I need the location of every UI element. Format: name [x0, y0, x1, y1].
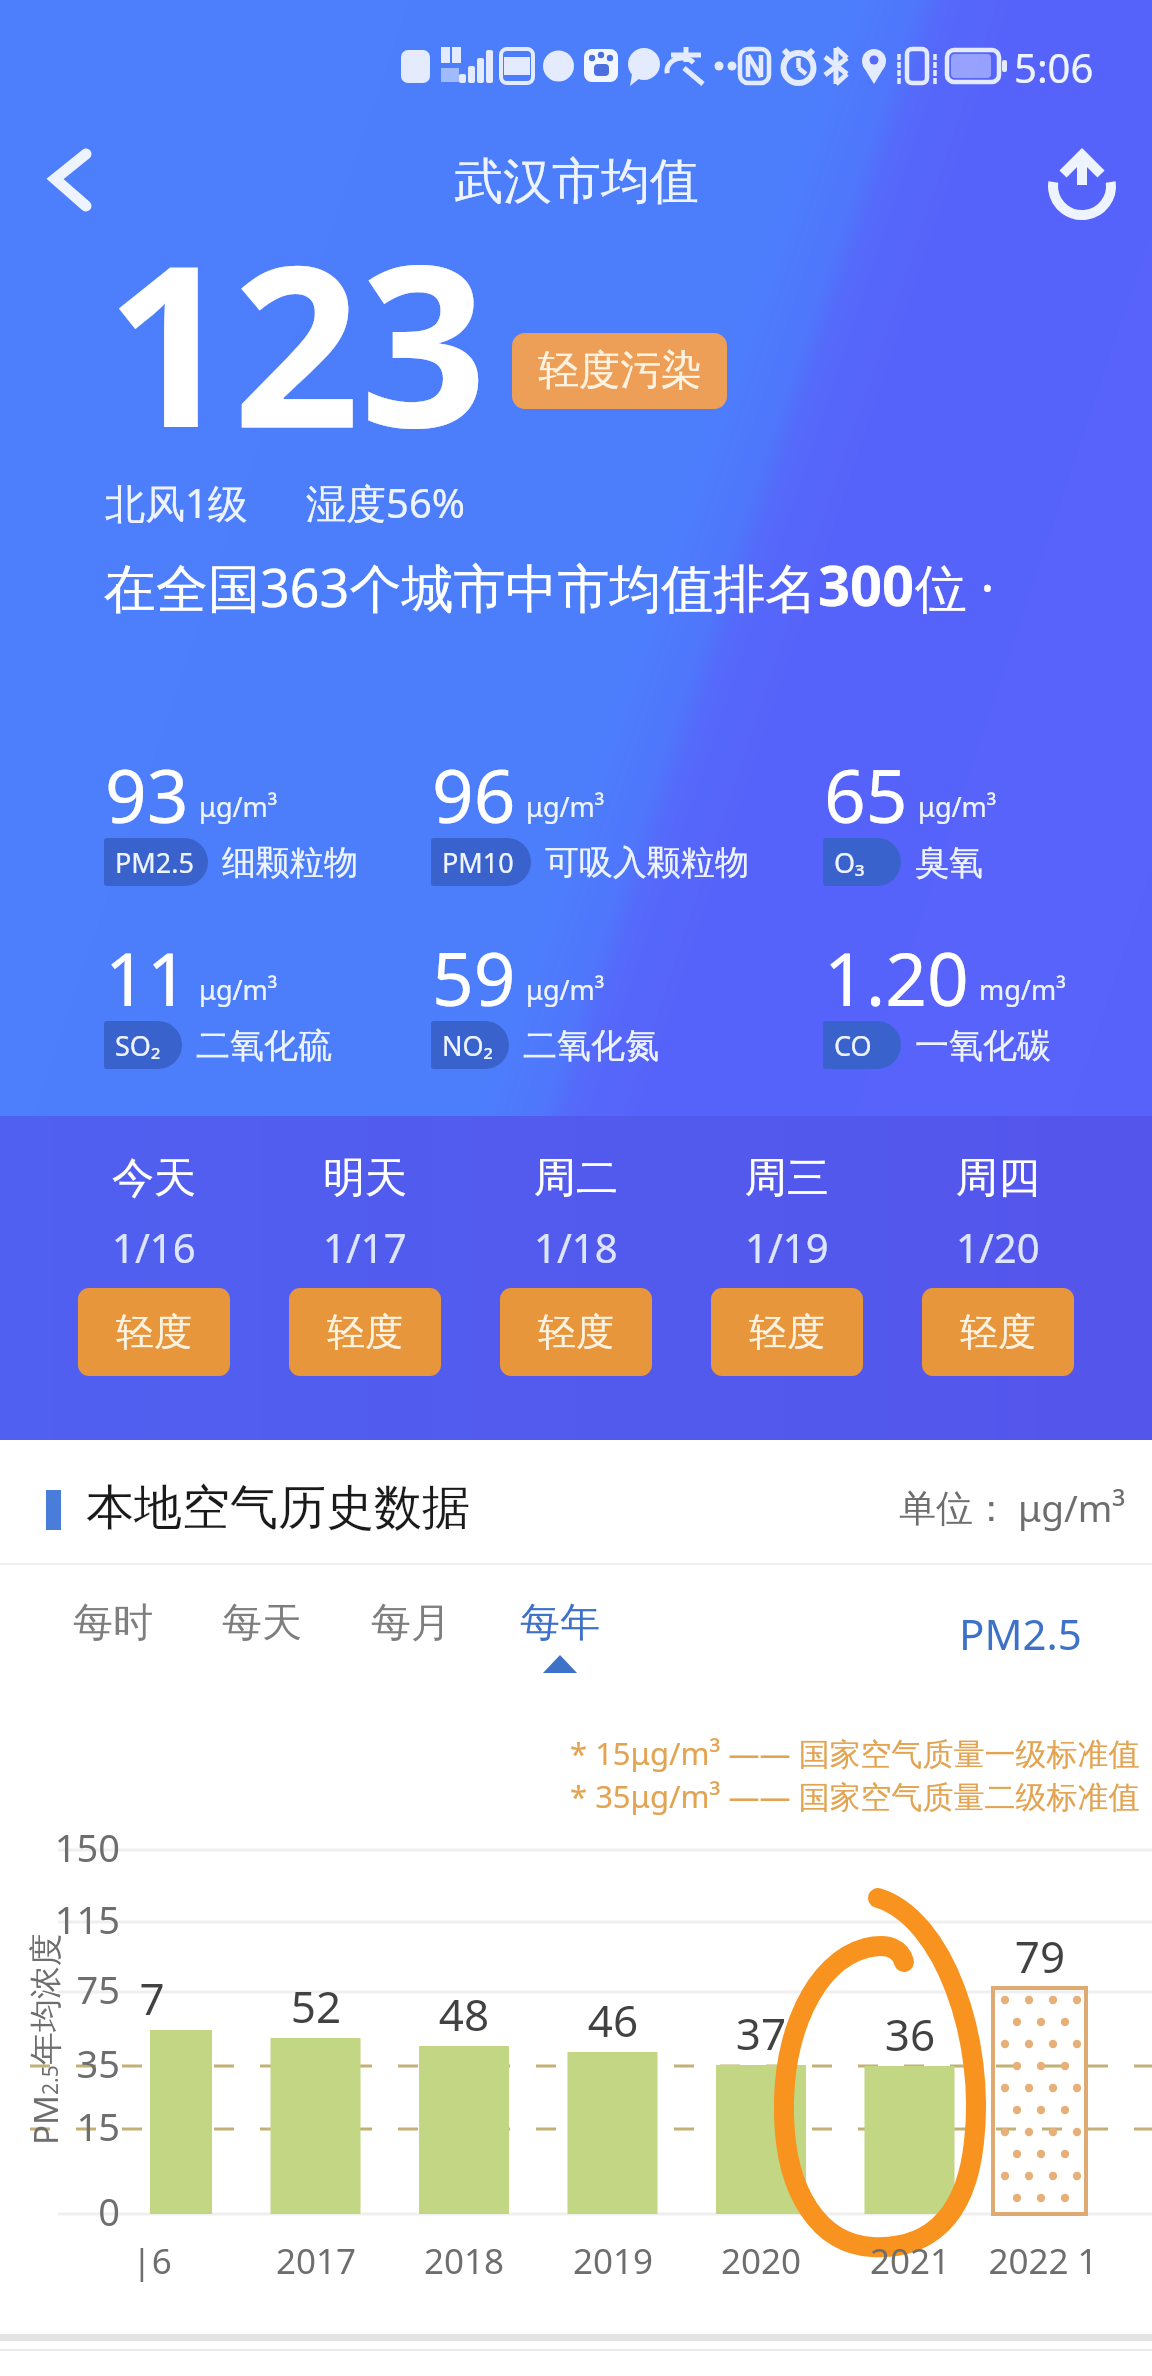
staticText: 15 — [20, 2100, 120, 2152]
button[interactable]: 周三 — [711, 1152, 863, 1376]
button[interactable]: 每时 — [58, 1597, 168, 1689]
staticText: μg/m³ — [199, 971, 278, 1008]
button[interactable]: PM2.5 — [959, 1605, 1082, 1662]
staticText: 每年 — [520, 1597, 600, 1647]
staticText: 1/20 — [956, 1220, 1040, 1274]
staticText: 48 — [414, 1984, 514, 2044]
staticText: 位 · — [915, 551, 995, 622]
staticText: PM — [23, 2095, 67, 2145]
staticText: 轻度 — [538, 1308, 614, 1356]
staticText: 46 — [563, 1990, 663, 2050]
staticText: 周四 — [956, 1152, 1040, 1205]
staticText: 在全国363个城市中市均值排名 — [104, 551, 818, 622]
staticText: 0 — [20, 2185, 120, 2237]
staticText: 年均浓度 — [25, 1933, 67, 2065]
staticText: 1/16 — [112, 1220, 196, 1274]
staticText: 1/18 — [534, 1220, 618, 1274]
staticText: 37 — [711, 2003, 811, 2063]
staticText: 2021 — [830, 2237, 990, 2285]
staticText: μg/m³ — [199, 788, 278, 825]
staticText: 35 — [20, 2037, 120, 2089]
staticText: 轻度污染 — [538, 345, 702, 397]
staticText: * 35μg/m³ —— 国家空气质量二级标准值 — [570, 1775, 1140, 1817]
button[interactable]: 每年 — [505, 1597, 615, 1689]
staticText: μg/m³ — [918, 788, 997, 825]
staticText: 轻度 — [749, 1308, 825, 1356]
staticText: 11 — [105, 928, 189, 1027]
staticText: mg/m³ — [979, 971, 1066, 1008]
staticText: 123 — [106, 190, 487, 492]
staticText: 79 — [990, 1926, 1090, 1986]
staticText: 每时 — [73, 1597, 153, 1647]
staticText: 2020 — [681, 2237, 841, 2285]
staticText: μg/m³ — [526, 788, 605, 825]
staticText: 5:06 — [1014, 40, 1094, 94]
button[interactable]: 明天 — [289, 1152, 441, 1376]
staticText: 96 — [432, 745, 516, 844]
staticText: 93 — [105, 745, 189, 844]
staticText: 今天 — [112, 1152, 196, 1205]
staticText: 可吸入颗粒物 — [545, 841, 749, 884]
staticText: 1/19 — [745, 1220, 829, 1274]
staticText: PM10 — [442, 844, 514, 881]
staticText: 1/17 — [323, 1220, 407, 1274]
staticText: PM2.5 — [115, 844, 194, 881]
staticText: O₃ — [834, 844, 865, 881]
staticText: CO — [834, 1027, 872, 1064]
button[interactable]: 每天 — [207, 1597, 317, 1689]
button[interactable]: 周四 — [922, 1152, 1074, 1376]
staticText: 1.20 — [824, 928, 969, 1027]
button[interactable]: 每月 — [356, 1597, 466, 1689]
staticText: 武汉市均值 — [454, 151, 699, 213]
button[interactable]: Back — [24, 128, 120, 224]
staticText: 单位： — [899, 1485, 1010, 1532]
staticText: 每天 — [222, 1597, 302, 1647]
staticText: 湿度56% — [306, 475, 465, 530]
staticText: 7 — [102, 1968, 202, 2028]
staticText: SO₂ — [115, 1027, 161, 1064]
staticText: μg/m³ — [1018, 1482, 1126, 1532]
staticText: 2.5 — [36, 2065, 65, 2095]
staticText: 周三 — [745, 1152, 829, 1205]
staticText: |6 — [72, 2237, 232, 2285]
staticText: 65 — [824, 745, 908, 844]
button[interactable]: 轻度污染 — [512, 333, 727, 409]
staticText: 周二 — [534, 1152, 618, 1205]
staticText: 二氧化氮 — [523, 1024, 659, 1067]
button[interactable]: 今天 — [78, 1152, 230, 1376]
staticText: 75 — [20, 1963, 120, 2015]
staticText: 2019 — [533, 2237, 693, 2285]
staticText: 细颗粒物 — [222, 841, 358, 884]
button[interactable]: 周二 — [500, 1152, 652, 1376]
staticText: 二氧化硫 — [196, 1024, 332, 1067]
staticText: 臭氧 — [915, 841, 983, 884]
staticText: 每月 — [371, 1597, 451, 1647]
staticText: 轻度 — [327, 1308, 403, 1356]
staticText: 2022 1 — [958, 2237, 1128, 2285]
staticText: 2017 — [236, 2237, 396, 2285]
staticText: 北风1级 — [105, 475, 248, 530]
staticText: 115 — [20, 1893, 120, 1945]
staticText: 36 — [860, 2004, 960, 2064]
staticText: 一氧化碳 — [915, 1024, 1051, 1067]
staticText: 150 — [20, 1821, 120, 1873]
staticText: μg/m³ — [526, 971, 605, 1008]
staticText: * 15μg/m³ —— 国家空气质量一级标准值 — [570, 1732, 1140, 1774]
staticText: 轻度 — [116, 1308, 192, 1356]
staticText: 59 — [432, 928, 516, 1027]
staticText: 明天 — [323, 1152, 407, 1205]
staticText: NO₂ — [442, 1027, 494, 1064]
staticText: 2018 — [384, 2237, 544, 2285]
staticText: PM2.5 — [959, 1605, 1082, 1662]
staticText: 52 — [266, 1976, 366, 2036]
staticText: 轻度 — [960, 1308, 1036, 1356]
staticText: 本地空气历史数据 — [86, 1478, 470, 1538]
button[interactable]: Share — [1033, 132, 1129, 228]
staticText: 300 — [818, 546, 915, 622]
